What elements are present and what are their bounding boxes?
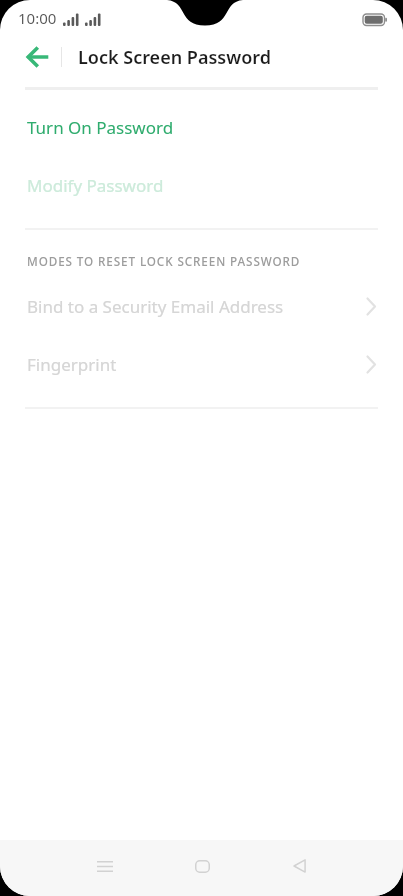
staticText: Bind to a Security Email Address <box>27 295 284 318</box>
staticText: Turn On Password <box>27 116 174 139</box>
staticText: Fingerprint <box>27 353 117 376</box>
button[interactable] <box>275 842 323 890</box>
button[interactable]: Bind to a Security Email Address <box>0 277 403 335</box>
button[interactable]: Fingerprint <box>0 335 403 393</box>
button[interactable]: Modify Password <box>0 156 403 214</box>
staticText: Lock Screen Password <box>78 45 271 70</box>
staticText: 10:00 <box>18 8 57 28</box>
staticText: Modify Password <box>27 174 164 197</box>
button[interactable]: Turn On Password <box>0 98 403 156</box>
button[interactable] <box>81 842 129 890</box>
button[interactable] <box>0 36 61 78</box>
button[interactable] <box>178 842 226 890</box>
staticText: MODES TO RESET LOCK SCREEN PASSWORD <box>27 253 301 269</box>
